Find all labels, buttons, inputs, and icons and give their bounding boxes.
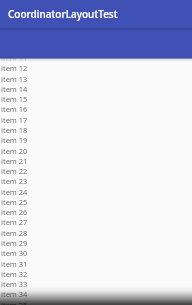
button[interactable]: item 35 xyxy=(0,300,192,305)
staticText: item 24 xyxy=(1,187,28,197)
staticText: item 35 xyxy=(1,300,28,305)
staticText: item 13 xyxy=(1,74,28,84)
button[interactable]: item 13 xyxy=(0,74,192,84)
button[interactable]: item 33 xyxy=(0,279,192,289)
staticText: item 17 xyxy=(1,115,28,125)
staticText: item 22 xyxy=(1,166,28,176)
staticText: item 28 xyxy=(1,228,28,238)
button[interactable]: item 19 xyxy=(0,135,192,145)
staticText: item 18 xyxy=(1,125,28,135)
button[interactable]: item 21 xyxy=(0,156,192,166)
staticText: item 20 xyxy=(1,146,28,156)
button[interactable]: item 31 xyxy=(0,259,192,269)
button[interactable]: item 32 xyxy=(0,269,192,279)
staticText: item 11 xyxy=(1,53,28,63)
button[interactable]: item 12 xyxy=(0,63,192,73)
button[interactable]: item 18 xyxy=(0,125,192,135)
staticText: item 25 xyxy=(1,197,28,207)
staticText: item 19 xyxy=(1,135,28,145)
button[interactable]: item 29 xyxy=(0,238,192,248)
staticText: item 30 xyxy=(1,248,28,258)
button[interactable]: item 34 xyxy=(0,289,192,299)
button[interactable]: item 28 xyxy=(0,228,192,238)
staticText: item 32 xyxy=(1,269,28,279)
button[interactable]: item 24 xyxy=(0,187,192,197)
staticText: item 21 xyxy=(1,156,28,166)
button[interactable]: item 11 xyxy=(0,53,192,63)
staticText: item 12 xyxy=(1,63,28,73)
staticText: item 23 xyxy=(1,176,28,186)
button[interactable]: CoordinatorLayoutTest xyxy=(0,0,192,28)
button[interactable]: item 30 xyxy=(0,248,192,258)
staticText: item 29 xyxy=(1,238,28,248)
staticText: item 31 xyxy=(1,259,28,269)
button[interactable]: item 22 xyxy=(0,166,192,176)
button[interactable]: item 23 xyxy=(0,176,192,186)
button[interactable]: item 15 xyxy=(0,94,192,104)
button[interactable]: item 20 xyxy=(0,146,192,156)
staticText: item 15 xyxy=(1,94,28,104)
button[interactable]: item 17 xyxy=(0,115,192,125)
staticText: item 26 xyxy=(1,207,28,217)
button[interactable]: item 27 xyxy=(0,217,192,227)
staticText: item 27 xyxy=(1,217,28,227)
staticText: item 33 xyxy=(1,279,28,289)
staticText: item 16 xyxy=(1,104,28,114)
staticText: CoordinatorLayoutTest xyxy=(8,7,118,21)
button[interactable]: item 16 xyxy=(0,104,192,114)
button[interactable]: item 25 xyxy=(0,197,192,207)
staticText: item 34 xyxy=(1,289,28,299)
staticText: item 14 xyxy=(1,84,28,94)
button[interactable]: item 26 xyxy=(0,207,192,217)
button[interactable]: item 14 xyxy=(0,84,192,94)
